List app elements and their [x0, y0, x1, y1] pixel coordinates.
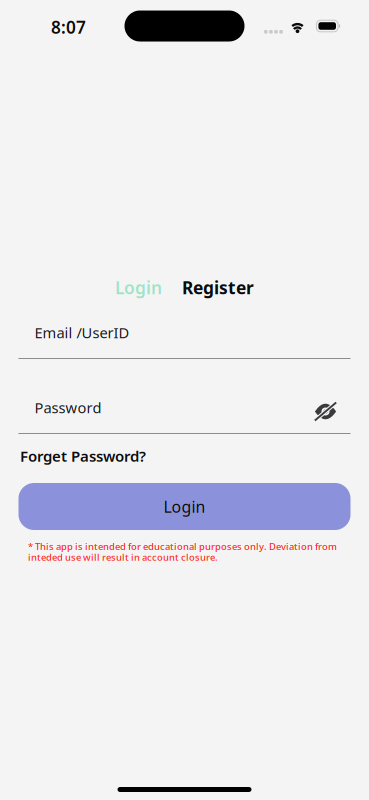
staticText: inteded use will result in account closu… [28, 551, 218, 564]
staticText: Login [163, 496, 205, 517]
staticText: Forget Password? [20, 446, 146, 466]
button[interactable]: Login [115, 276, 162, 299]
staticText: Password [34, 398, 101, 417]
button[interactable]: Login [18, 483, 350, 530]
staticText: Email /UserID [34, 323, 129, 342]
staticText: 8:07 [51, 15, 86, 39]
button[interactable]: Register [182, 276, 254, 299]
button[interactable]: Forget Password? [20, 446, 146, 466]
staticText: Login [115, 276, 162, 299]
staticText: * This app is intended for educational p… [28, 540, 337, 553]
staticText: Register [182, 276, 254, 299]
button[interactable]: Show password [314, 403, 336, 420]
